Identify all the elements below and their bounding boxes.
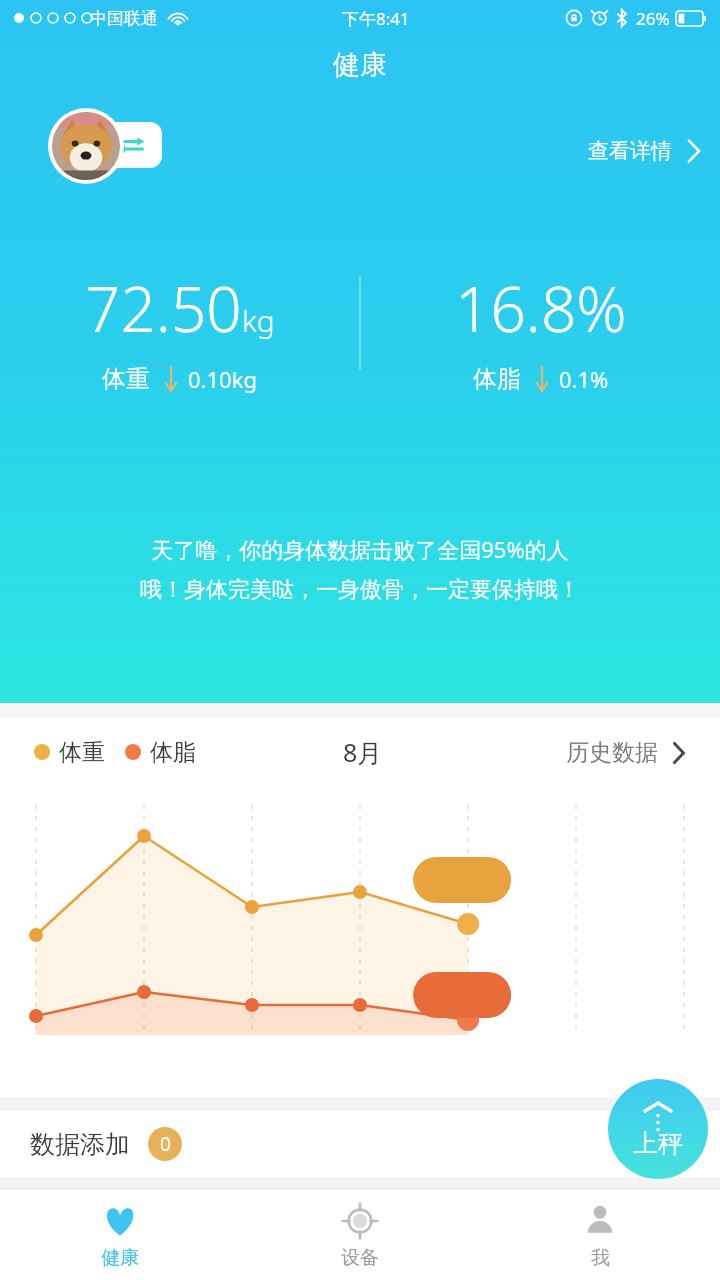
staticText: 0.1% [559, 364, 609, 394]
staticText: 体脂 [150, 738, 196, 767]
staticText: 设备 [341, 1246, 379, 1270]
button[interactable]: 设备 [240, 1189, 480, 1280]
staticText: 72.50 [85, 266, 242, 350]
staticText: 天了噜，你的身体数据击败了全国95%的人 [151, 534, 569, 564]
staticText: 数据添加 [30, 1129, 130, 1160]
button[interactable]: 历史数据 [566, 730, 686, 775]
button[interactable]: 查看详情 [570, 130, 720, 172]
button[interactable]: 切换用户 [100, 122, 162, 168]
button[interactable]: 我 [480, 1189, 720, 1280]
staticText: 下午8:41 [342, 7, 410, 30]
staticText: 8月 [343, 735, 383, 769]
staticText: 上秤 [633, 1128, 683, 1159]
staticText: 16.8% [455, 266, 627, 350]
staticText: 26% [636, 7, 670, 30]
staticText: 体重 [102, 364, 150, 394]
staticText: 中国联通 [90, 8, 158, 29]
staticText: kg [242, 300, 275, 341]
button[interactable]: 用户头像 [48, 108, 124, 184]
button[interactable]: 上秤 [608, 1079, 708, 1179]
staticText: 历史数据 [566, 738, 658, 767]
staticText: 健康 [101, 1246, 139, 1270]
staticText: 体脂 [473, 364, 521, 394]
staticText: 0.10kg [188, 364, 257, 394]
button[interactable]: 数据添加 [0, 1111, 720, 1177]
staticText: 我 [591, 1246, 610, 1270]
staticText: 健康 [333, 48, 387, 82]
staticText: 0 [160, 1131, 171, 1157]
button[interactable]: 健康 [0, 1189, 240, 1280]
staticText: 哦！身体完美哒，一身傲骨，一定要保持哦！ [140, 576, 580, 604]
staticText: 体重 [59, 738, 105, 767]
staticText: 查看详情 [588, 138, 672, 164]
